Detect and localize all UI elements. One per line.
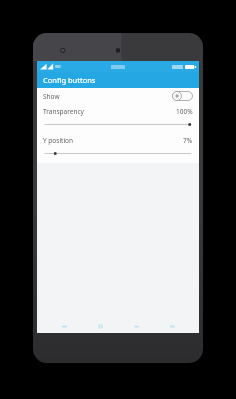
staticText: Config buttons <box>43 75 96 85</box>
staticText: Transparency <box>43 107 84 116</box>
button[interactable]: Show <box>37 88 199 104</box>
button[interactable]: Show toggle <box>172 91 193 101</box>
button[interactable]: Transparency <box>37 104 199 128</box>
button[interactable]: Y position <box>37 133 199 157</box>
staticText: 7% <box>183 136 193 145</box>
button[interactable]: Recents <box>163 319 181 333</box>
button[interactable]: Back <box>127 319 145 333</box>
button[interactable]: Apps <box>55 319 73 333</box>
staticText: Show <box>43 92 60 101</box>
staticText: 100% <box>176 107 193 116</box>
staticText: Y position <box>43 136 74 145</box>
button[interactable]: Settings <box>91 319 109 333</box>
